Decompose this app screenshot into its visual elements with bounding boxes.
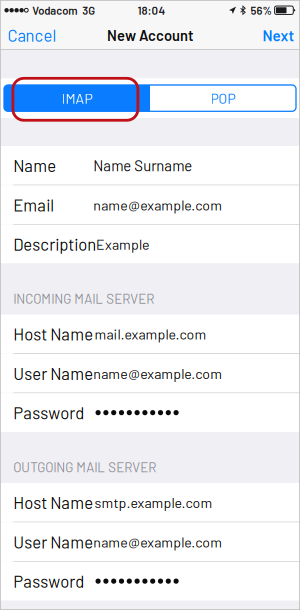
button[interactable]: IMAP [4,85,150,111]
staticText: User Name [13,532,93,552]
staticText: Host Name [13,492,93,512]
staticText: User Name [13,363,93,383]
button[interactable]: POP [150,85,296,111]
staticText: Password [13,571,84,591]
staticText: Name [13,155,56,175]
staticText: INCOMING MAIL SERVER [13,290,154,306]
staticText: name@example.com [93,365,222,382]
button[interactable]: Password [0,393,300,432]
staticText: POP [210,90,235,107]
staticText: New Account [107,26,193,44]
staticText: Cancel [7,25,56,45]
staticText: name@example.com [93,533,222,550]
button[interactable]: Next [255,20,300,50]
staticText: Host Name [13,324,93,344]
staticText: 56% [251,3,272,17]
staticText: smtp.example.com [94,494,212,511]
staticText: Example [96,236,150,253]
button[interactable]: Host Name [0,314,300,353]
staticText: Email [13,195,54,215]
button[interactable]: User Name [0,522,300,561]
button[interactable]: Name [0,146,300,185]
button[interactable]: User Name [0,354,300,393]
staticText: OUTGOING MAIL SERVER [13,459,156,475]
button[interactable]: Cancel [0,20,63,50]
staticText: 3G [82,3,95,17]
staticText: IMAP [61,90,92,107]
staticText: Name Surname [93,156,192,174]
staticText: Description [13,234,96,254]
button[interactable]: Description [0,225,300,263]
button[interactable]: Password [0,562,300,600]
staticText: name@example.com [93,196,222,213]
button[interactable]: Host Name [0,483,300,522]
staticText: mail.example.com [94,325,206,342]
staticText: Vodacom [32,3,77,17]
button[interactable]: Email [0,185,300,224]
staticText: 18:04 [137,3,165,17]
staticText: Next [262,26,294,44]
staticText: Password [13,403,84,423]
